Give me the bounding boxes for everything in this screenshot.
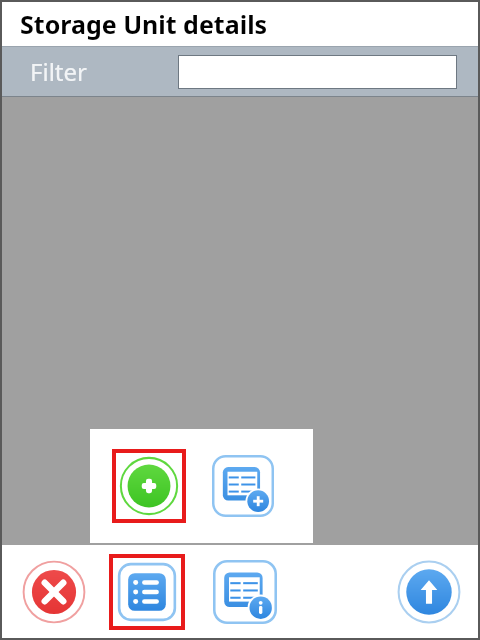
button[interactable]: Add document xyxy=(208,451,278,521)
button[interactable]: Add new xyxy=(112,449,186,523)
button[interactable]: Details xyxy=(209,556,281,628)
button[interactable]: List xyxy=(109,554,185,630)
button[interactable]: Up xyxy=(393,556,465,628)
button[interactable]: Cancel xyxy=(18,556,90,628)
staticText: Storage Unit details xyxy=(20,7,268,41)
staticText: Filter xyxy=(30,55,87,88)
button[interactable] xyxy=(178,55,457,89)
